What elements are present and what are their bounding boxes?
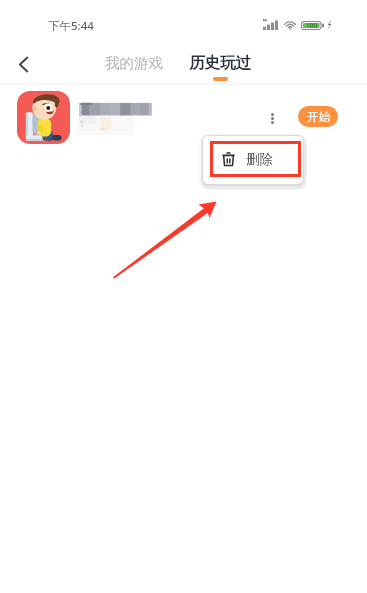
- button[interactable]: 历史玩过: [183, 44, 257, 84]
- staticText: 历史玩过: [189, 53, 251, 73]
- button[interactable]: More options: [0, 85, 367, 150]
- staticText: 下午5:44: [48, 18, 94, 34]
- staticText: 删除: [246, 151, 273, 168]
- button[interactable]: 删除: [203, 136, 303, 184]
- button[interactable]: Back: [2, 44, 44, 84]
- button[interactable]: 开始: [298, 106, 338, 127]
- button[interactable]: 我的游戏: [97, 46, 171, 80]
- staticText: 我的游戏: [105, 54, 163, 72]
- staticText: 100: [306, 21, 318, 30]
- staticText: 开始: [307, 110, 330, 124]
- button[interactable]: More options: [260, 95, 284, 141]
